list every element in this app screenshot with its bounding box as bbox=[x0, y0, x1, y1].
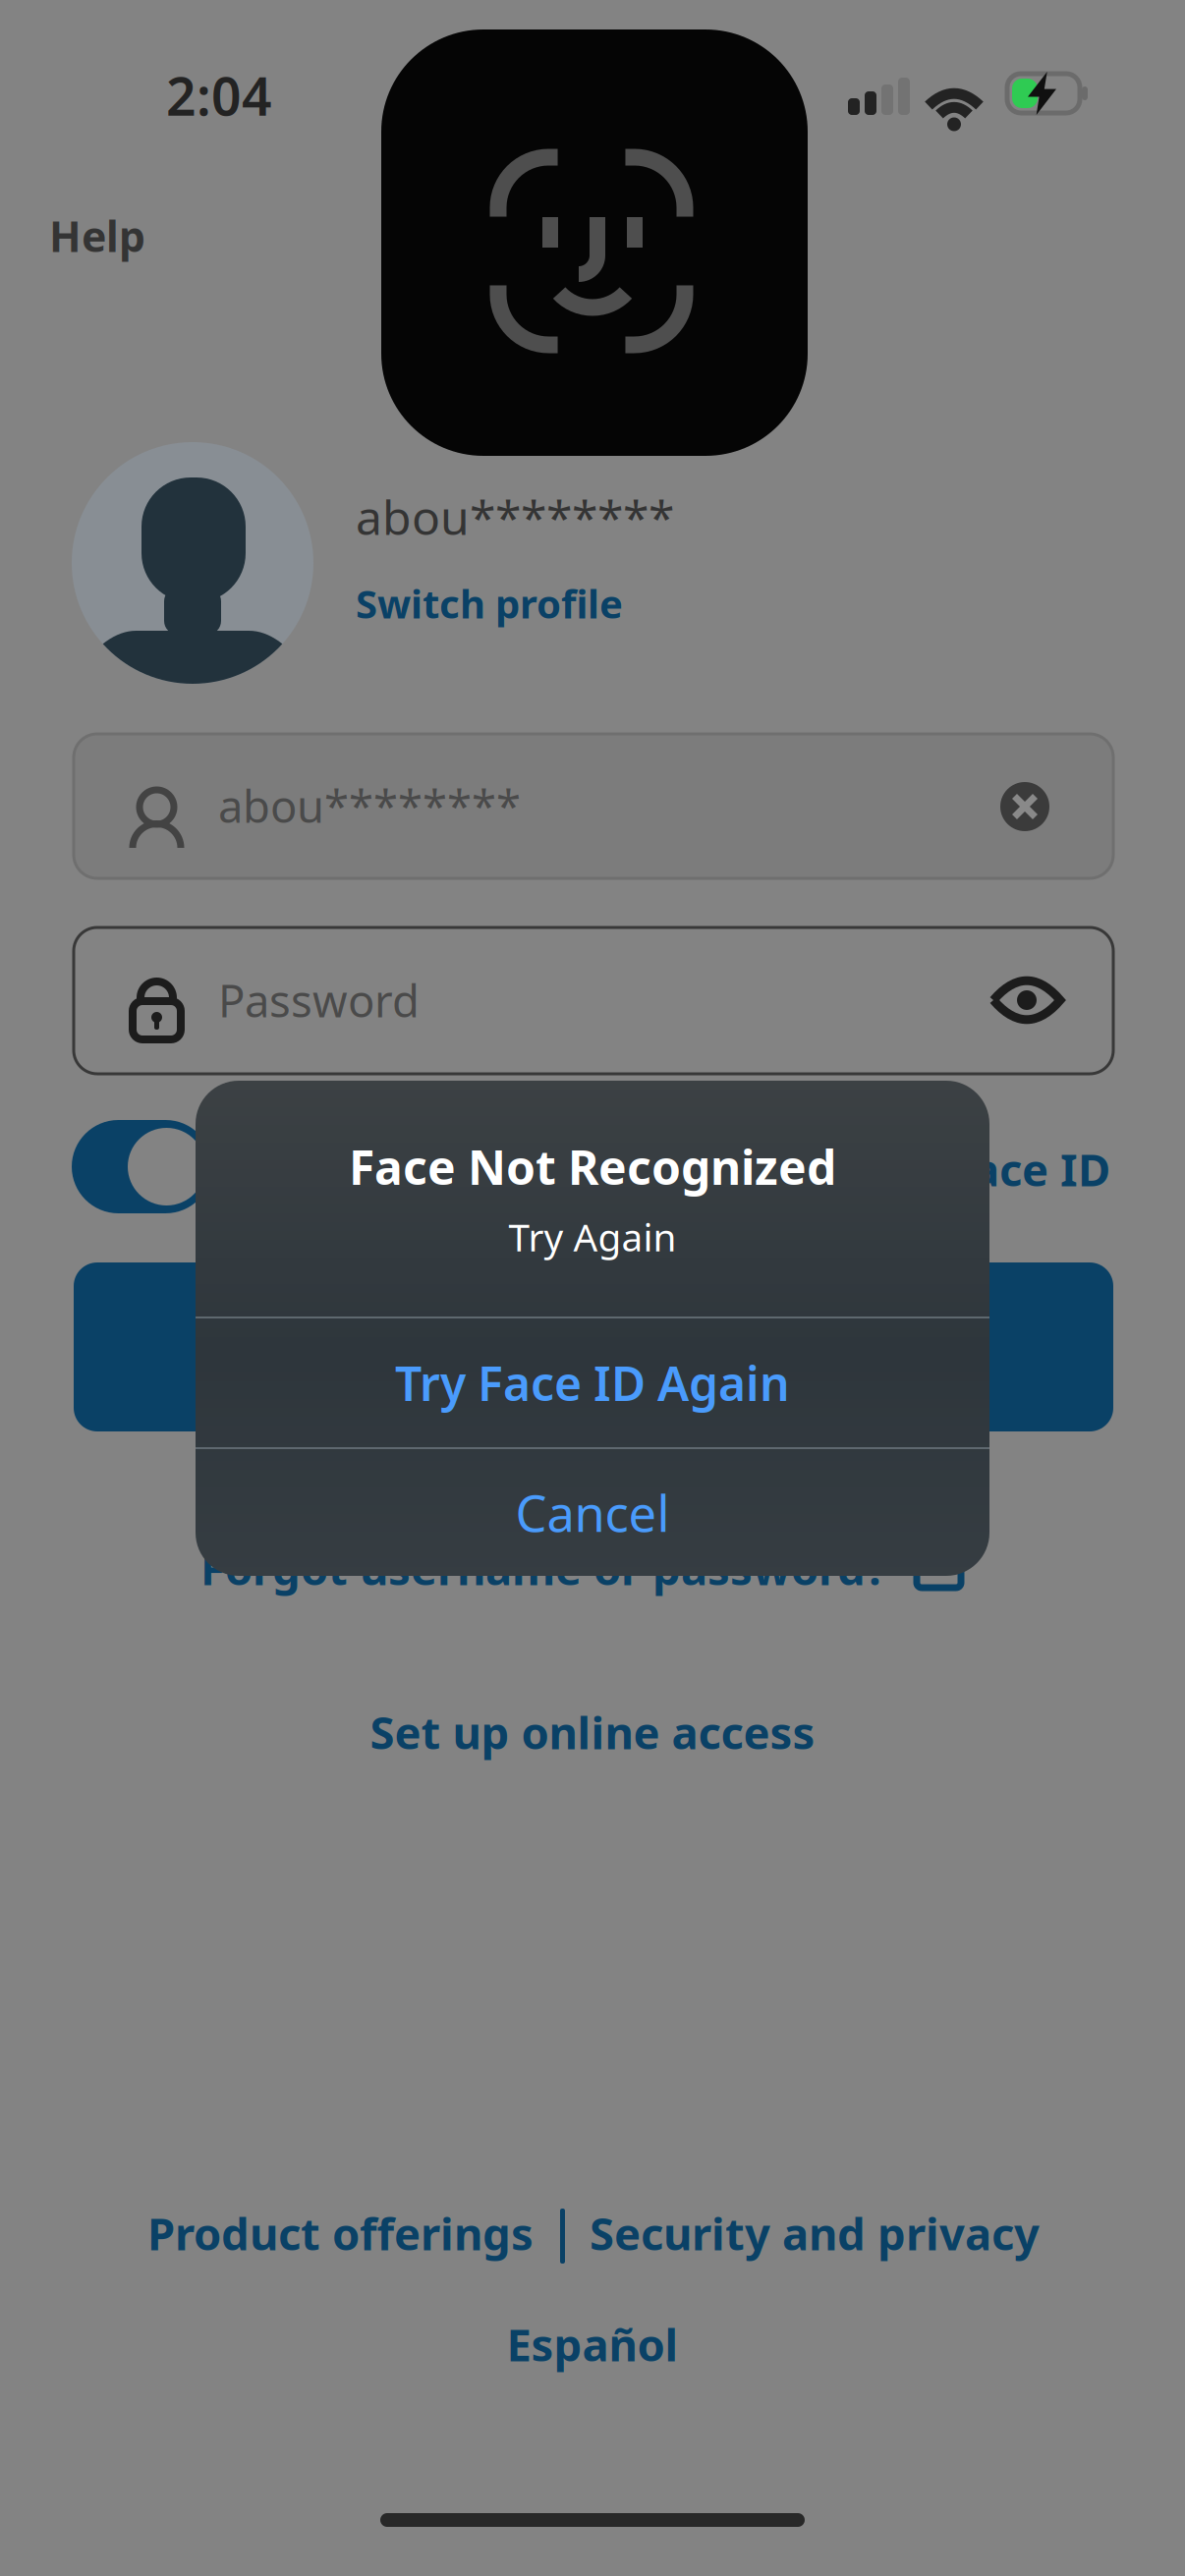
staticText: Cancel bbox=[515, 1479, 670, 1546]
button[interactable]: Cancel bbox=[196, 1449, 989, 1576]
staticText: Help bbox=[49, 208, 145, 264]
button[interactable]: Set up online access bbox=[0, 0, 590, 61]
staticText: Try Again bbox=[508, 1212, 677, 1262]
button[interactable]: Try Face ID Again bbox=[196, 1318, 989, 1447]
staticText: Español bbox=[507, 2315, 678, 2374]
staticText: Switch profile bbox=[356, 577, 623, 629]
staticText: Face Not Recognized bbox=[349, 1135, 836, 1198]
staticText: Set up online access bbox=[370, 1702, 815, 1762]
button[interactable]: Security and privacy bbox=[0, 0, 472, 61]
staticText: Sign in bbox=[519, 1317, 668, 1377]
staticText: abou******** bbox=[218, 776, 521, 835]
staticText: Use Face ID bbox=[854, 1140, 1110, 1199]
staticText: 2:04 bbox=[166, 61, 272, 130]
button[interactable]: Forgot username or password? bbox=[0, 0, 786, 61]
button[interactable]: Sign in bbox=[0, 0, 1040, 169]
staticText: Product offerings bbox=[147, 2204, 534, 2263]
staticText: Security and privacy bbox=[590, 2204, 1040, 2263]
staticText: Try Face ID Again bbox=[395, 1351, 790, 1414]
staticText: Forgot username or password? bbox=[200, 1538, 887, 1598]
staticText: abou******** bbox=[356, 485, 674, 548]
staticText: Password bbox=[218, 971, 420, 1030]
